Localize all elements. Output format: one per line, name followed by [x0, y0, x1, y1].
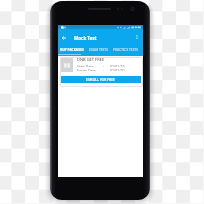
staticText: PRACTICE TESTS [113, 48, 138, 52]
staticText: ENROLL FOR FREE [86, 77, 116, 82]
staticText: 01/01/20 [110, 68, 125, 71]
button[interactable]: DNB GET FREE [60, 57, 143, 87]
staticText: : [103, 68, 104, 71]
staticText: EXAM TESTS [89, 48, 108, 52]
staticText: Start Date [77, 64, 94, 67]
staticText: BUY PACKAGES [60, 48, 84, 52]
button[interactable]: Back [60, 34, 68, 42]
staticText: 01/01/19 [110, 64, 125, 67]
button[interactable]: ENROLL FOR FREE [61, 76, 141, 83]
button[interactable]: PRACTICE TESTS [112, 44, 139, 56]
staticText: Expiry Date [77, 68, 96, 71]
button[interactable]: BUY PACKAGES [58, 44, 85, 56]
staticText: DNB GET FREE [77, 57, 105, 62]
button[interactable]: EXAM TESTS [85, 44, 112, 56]
button[interactable]: More options [132, 32, 141, 41]
staticText: : [103, 64, 104, 67]
staticText: Mock Test [74, 35, 97, 41]
